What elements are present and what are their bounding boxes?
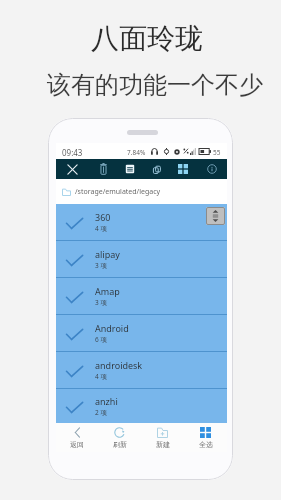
button[interactable]: anzhi <box>56 389 227 423</box>
staticText: 八面玲珑 <box>91 21 203 56</box>
button[interactable]: Delete <box>95 159 111 179</box>
button[interactable]: Close <box>64 159 80 179</box>
staticText: 6 项 <box>95 335 107 344</box>
button[interactable]: 返回 <box>56 423 98 452</box>
staticText: alipay <box>95 248 120 260</box>
staticText: 该有的功能一个不少 <box>47 70 263 100</box>
staticText: 刷新 <box>113 440 127 449</box>
button[interactable]: 刷新 <box>98 423 141 452</box>
staticText: 7.84% <box>127 148 146 157</box>
button[interactable]: 360 <box>56 204 227 240</box>
staticText: /storage/emulated/legacy <box>75 187 161 197</box>
button[interactable]: 新建 <box>141 423 184 452</box>
staticText: Android <box>95 322 129 334</box>
button[interactable]: Info <box>204 159 220 179</box>
staticText: 09:43 <box>62 147 83 158</box>
staticText: androidesk <box>95 359 143 371</box>
button[interactable]: androidesk <box>56 352 227 388</box>
staticText: anzhi <box>95 395 118 407</box>
staticText: 3 项 <box>95 298 107 307</box>
button[interactable]: Android <box>56 315 227 351</box>
staticText: 4 项 <box>95 372 107 381</box>
button[interactable]: Scroll <box>206 207 225 225</box>
button[interactable]: 全选 <box>184 423 227 452</box>
staticText: 新建 <box>156 440 170 449</box>
staticText: 360 <box>95 211 111 223</box>
staticText: 返回 <box>70 440 84 449</box>
staticText: 全选 <box>199 440 213 449</box>
staticText: 4 项 <box>95 224 107 233</box>
button[interactable]: Amap <box>56 278 227 314</box>
button[interactable]: Paste <box>122 159 138 179</box>
button[interactable]: Grid view <box>175 159 191 179</box>
staticText: 3 项 <box>95 261 107 270</box>
staticText: 55 <box>213 148 221 157</box>
staticText: 2 项 <box>95 408 107 417</box>
button[interactable]: alipay <box>56 241 227 277</box>
staticText: Amap <box>95 285 120 297</box>
button[interactable]: Copy <box>149 159 165 179</box>
